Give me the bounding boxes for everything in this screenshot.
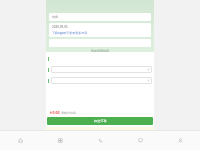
staticText: 请核对信息: [61, 111, 76, 115]
button[interactable]: Categories: [40, 131, 80, 150]
staticText: 信息: [52, 15, 58, 19]
button[interactable]: [46, 64, 154, 75]
button[interactable]: 信息: [49, 13, 151, 21]
button[interactable]: [46, 75, 154, 86]
button[interactable]: [51, 66, 152, 73]
staticText: 2020-09-05: [52, 25, 68, 29]
staticText: 查看详细信息: [91, 49, 109, 52]
button[interactable]: [51, 77, 152, 84]
staticText: 下载app即可查看更多内容: [52, 31, 88, 35]
button[interactable]: Home: [0, 131, 40, 150]
button[interactable]: Messages: [120, 131, 160, 150]
button[interactable]: 2020-09-05: [49, 23, 151, 37]
button[interactable]: Profile: [160, 131, 200, 150]
button[interactable]: 温馨提示: [46, 127, 154, 138]
staticText: 提交订单: [94, 119, 107, 123]
button[interactable]: [46, 53, 154, 64]
button[interactable]: 提交订单: [47, 117, 153, 125]
button[interactable]: Call: [80, 131, 120, 150]
staticText: ￥0.00: [49, 110, 60, 115]
